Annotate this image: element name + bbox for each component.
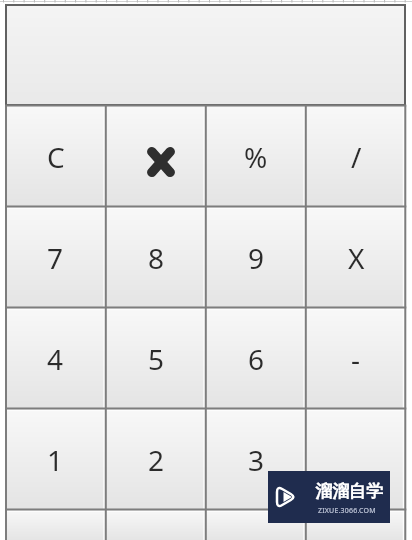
button[interactable]: %	[206, 106, 306, 207]
staticText: /	[351, 138, 362, 176]
button[interactable]: 5	[106, 308, 206, 409]
staticText: %	[244, 138, 268, 176]
staticText: ZIXUE.3066.COM	[318, 506, 376, 516]
staticText: 4	[47, 340, 64, 378]
staticText: 8	[148, 239, 165, 277]
staticText: 7	[47, 239, 64, 277]
staticText: 5	[148, 340, 165, 378]
button[interactable]	[106, 106, 206, 207]
staticText: 溜溜自学	[315, 481, 383, 502]
button[interactable]: X	[306, 207, 406, 308]
button[interactable]: 1	[5, 409, 106, 510]
staticText: 6	[248, 340, 265, 378]
button[interactable]	[106, 510, 206, 540]
button[interactable]: 溜溜自学	[268, 471, 390, 523]
staticText: 9	[248, 239, 265, 277]
button[interactable]: 9	[206, 207, 306, 308]
button[interactable]: C	[5, 106, 106, 207]
button[interactable]: 4	[5, 308, 106, 409]
button[interactable]: /	[306, 106, 406, 207]
button[interactable]: 7	[5, 207, 106, 308]
button[interactable]	[5, 510, 106, 540]
staticText: 2	[148, 441, 165, 479]
button[interactable]: 2	[106, 409, 206, 510]
staticText: C	[47, 138, 65, 176]
staticText: 1	[47, 441, 64, 479]
button[interactable]	[306, 510, 406, 540]
button[interactable]: -	[306, 308, 406, 409]
button[interactable]	[306, 409, 406, 510]
button[interactable]: 6	[206, 308, 306, 409]
button[interactable]	[206, 510, 306, 540]
staticText: 3	[248, 441, 265, 479]
button[interactable]: 8	[106, 207, 206, 308]
staticText: X	[348, 239, 365, 277]
staticText: -	[351, 340, 361, 378]
button[interactable]: 3	[206, 409, 306, 510]
